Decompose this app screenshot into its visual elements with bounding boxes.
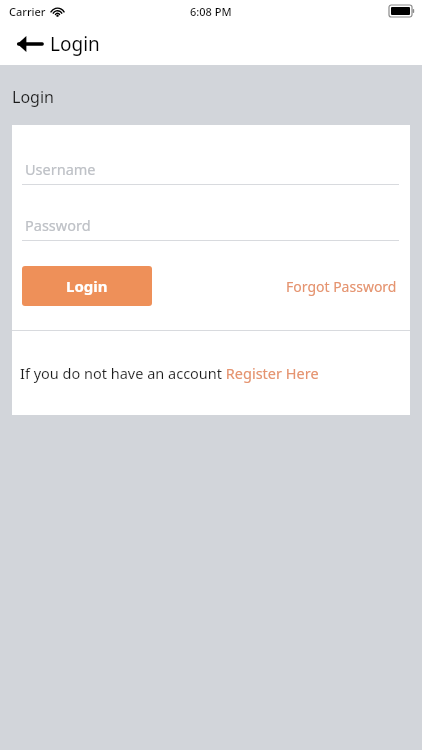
button[interactable]: Forgot Password [284,271,399,302]
staticText: Forgot Password [286,277,397,296]
staticText: 6:08 PM [190,4,232,19]
staticText: Login [12,86,54,108]
staticText: If you do not have an account Register H… [20,363,319,383]
button[interactable]: Username [22,154,399,185]
button[interactable]: Login [22,266,152,306]
staticText: Password [25,215,91,235]
staticText: Username [25,159,96,179]
button[interactable]: If you do not have an account Register H… [20,363,319,383]
staticText: Login [50,31,100,57]
staticText: Carrier [9,4,46,19]
staticText: Login [66,276,108,296]
button[interactable]: Back [14,28,46,60]
button[interactable]: Password [22,210,399,241]
